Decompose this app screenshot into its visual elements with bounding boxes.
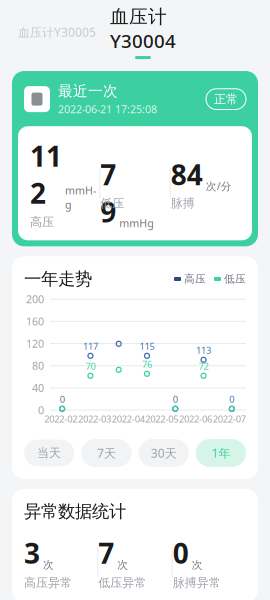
staticText: 7 bbox=[98, 534, 114, 571]
staticText: 112 bbox=[30, 137, 62, 212]
staticText: 2022-05 bbox=[145, 413, 178, 425]
staticText: 40 bbox=[32, 381, 44, 395]
staticText: 2022-06-21 17:25:08 bbox=[58, 102, 157, 116]
staticText: 70 bbox=[85, 360, 95, 372]
staticText: 115 bbox=[139, 340, 154, 352]
staticText: 120 bbox=[26, 336, 44, 351]
staticText: 0 bbox=[60, 393, 65, 405]
staticText: 最近一次 bbox=[58, 82, 118, 100]
staticText: 正常 bbox=[214, 92, 238, 106]
staticText: 低压异常 bbox=[98, 575, 146, 590]
staticText: mmHg bbox=[65, 183, 96, 212]
staticText: 79 bbox=[100, 156, 116, 230]
staticText: 血压计Y30004 bbox=[110, 5, 176, 53]
staticText: 0 bbox=[229, 393, 234, 405]
staticText: 次/分 bbox=[206, 179, 232, 193]
button[interactable]: 30天 bbox=[138, 439, 189, 467]
staticText: mmHg bbox=[119, 216, 154, 230]
staticText: 一年走势 bbox=[24, 268, 92, 290]
button[interactable]: 7天 bbox=[81, 439, 131, 467]
staticText: 低压 bbox=[100, 196, 124, 211]
staticText: 次 bbox=[117, 558, 128, 571]
staticText: 80 bbox=[32, 359, 44, 373]
staticText: 2022-04 bbox=[112, 413, 145, 425]
staticText: 113 bbox=[196, 344, 211, 356]
staticText: 血压计Y30005 bbox=[18, 24, 96, 40]
staticText: 高压 bbox=[184, 272, 206, 285]
staticText: 160 bbox=[26, 314, 44, 328]
staticText: 脉搏异常 bbox=[173, 575, 221, 590]
staticText: 低压 bbox=[224, 272, 246, 285]
staticText: 高压异常 bbox=[24, 575, 72, 590]
staticText: 2022-03 bbox=[78, 413, 111, 425]
staticText: 高压 bbox=[30, 215, 54, 229]
staticText: 2022-07 bbox=[213, 413, 246, 425]
staticText: 2022-02 bbox=[44, 413, 77, 425]
button[interactable]: 血压计Y30005 bbox=[18, 24, 96, 40]
staticText: 0 bbox=[173, 534, 189, 571]
staticText: 30天 bbox=[151, 445, 177, 461]
staticText: 76 bbox=[142, 358, 152, 370]
staticText: 0 bbox=[173, 393, 178, 405]
staticText: 0 bbox=[38, 403, 44, 417]
staticText: 次 bbox=[43, 558, 54, 571]
staticText: 84 bbox=[171, 156, 203, 193]
button[interactable]: 当天 bbox=[24, 440, 74, 466]
staticText: 72 bbox=[199, 360, 209, 372]
staticText: 2022-06 bbox=[179, 413, 212, 425]
staticText: 当天 bbox=[37, 446, 61, 460]
button[interactable]: 1年 bbox=[196, 439, 246, 467]
staticText: 7天 bbox=[97, 445, 116, 461]
staticText: 脉搏 bbox=[171, 196, 195, 211]
staticText: 1年 bbox=[211, 445, 230, 461]
staticText: 次 bbox=[192, 558, 203, 571]
staticText: 200 bbox=[26, 292, 44, 306]
staticText: 异常数据统计 bbox=[24, 501, 126, 522]
staticText: 117 bbox=[83, 340, 98, 352]
staticText: 3 bbox=[24, 534, 40, 571]
button[interactable]: 血压计Y30004 bbox=[110, 5, 176, 59]
